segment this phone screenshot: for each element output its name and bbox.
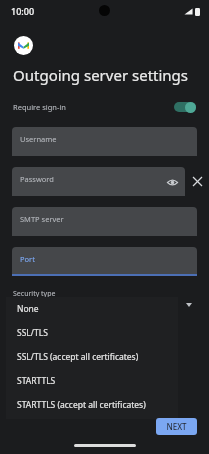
staticText: None bbox=[17, 303, 39, 315]
button[interactable]: Show password bbox=[165, 175, 179, 189]
button[interactable]: Open security type menu bbox=[184, 300, 194, 310]
staticText: Outgoing server settings bbox=[13, 65, 189, 85]
staticText: Password bbox=[20, 174, 54, 184]
staticText: STARTTLS bbox=[17, 375, 56, 387]
button[interactable]: Username bbox=[12, 127, 197, 156]
button[interactable]: Password bbox=[12, 167, 185, 196]
staticText: Require sign-in bbox=[13, 102, 66, 112]
button[interactable]: SSL/TLS bbox=[6, 321, 178, 345]
staticText: 10:00 bbox=[11, 5, 35, 17]
staticText: NEXT bbox=[166, 421, 187, 432]
button[interactable]: Clear bbox=[185, 167, 209, 196]
staticText: Username bbox=[20, 134, 57, 144]
button[interactable]: SMTP server bbox=[12, 207, 197, 236]
button[interactable]: Require sign-in bbox=[0, 97, 209, 117]
button[interactable]: None bbox=[6, 297, 178, 321]
staticText: SSL/TLS (accept all certificates) bbox=[17, 351, 139, 363]
button[interactable]: STARTTLS (accept all certificates) bbox=[6, 393, 178, 417]
staticText: SMTP server bbox=[20, 214, 64, 224]
staticText: Port bbox=[20, 254, 35, 264]
button[interactable]: SSL/TLS (accept all certificates) bbox=[6, 345, 178, 369]
staticText: Security type bbox=[13, 289, 56, 299]
button[interactable]: NEXT bbox=[156, 418, 197, 435]
button[interactable]: Port bbox=[12, 247, 197, 274]
button[interactable]: STARTTLS bbox=[6, 369, 178, 393]
staticText: SSL/TLS bbox=[17, 327, 48, 339]
staticText: STARTTLS (accept all certificates) bbox=[17, 399, 146, 411]
